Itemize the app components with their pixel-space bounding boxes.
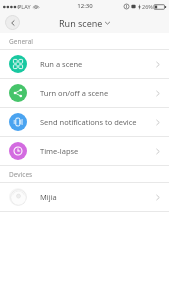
button[interactable]: Back [5,15,20,30]
staticText: PLAY [18,3,31,10]
staticText: Turn on/off a scene [40,88,109,98]
button[interactable]: Run scene [59,17,110,29]
staticText: Run scene [59,17,103,29]
button[interactable]: Time-lapse [0,137,169,165]
staticText: Devices [9,170,33,179]
staticText: Run a scene [40,59,83,69]
staticText: 12:30 [77,2,93,10]
button[interactable]: Run a scene [0,50,169,78]
staticText: Mijia [40,192,57,202]
staticText: 26% [142,3,153,10]
button[interactable]: Turn on/off a scene [0,79,169,107]
staticText: Send notifications to device [40,117,137,127]
button[interactable]: Mijia [0,183,169,211]
staticText: Time-lapse [40,146,79,156]
staticText: General [9,37,33,46]
button[interactable]: Send notifications to device [0,108,169,136]
